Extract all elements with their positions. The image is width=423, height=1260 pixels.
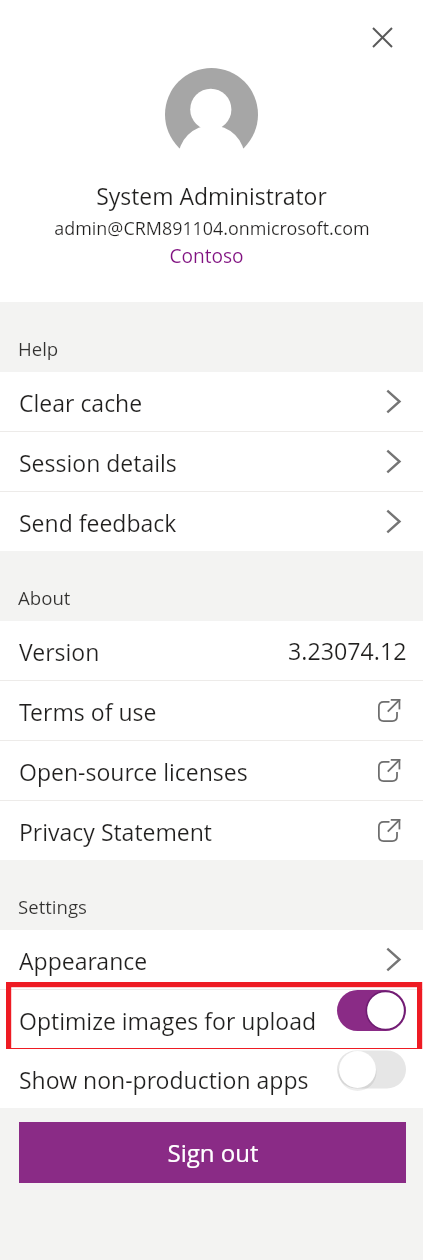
staticText: Help [18, 336, 59, 361]
button[interactable]: Toggle off [337, 1049, 406, 1090]
staticText: Session details [19, 447, 177, 478]
staticText: admin@CRM891104.onmicrosoft.com [54, 216, 370, 240]
button[interactable]: Session details [0, 432, 423, 491]
button[interactable]: Clear cache [0, 372, 423, 431]
staticText: 3.23074.12 [288, 635, 407, 667]
button[interactable]: Appearance [0, 930, 423, 989]
button[interactable]: Version [0, 621, 423, 680]
staticText: Version [19, 636, 100, 667]
staticText: Clear cache [19, 387, 143, 418]
button[interactable]: Send feedback [0, 492, 423, 551]
staticText: Send feedback [19, 507, 177, 538]
staticText: Show non-production apps [19, 1064, 309, 1095]
button[interactable]: Toggle on [337, 990, 406, 1031]
staticText: System Administrator [96, 181, 327, 212]
staticText: Terms of use [19, 696, 157, 727]
button[interactable]: Terms of use [0, 681, 423, 740]
staticText: About [18, 585, 71, 610]
button[interactable]: Close [348, 3, 416, 71]
button[interactable]: Open-source licenses [0, 741, 423, 800]
staticText: Settings [18, 894, 87, 919]
staticText: Contoso [169, 243, 244, 269]
staticText: Optimize images for upload [19, 1005, 317, 1036]
staticText: Sign out [167, 1136, 259, 1169]
button[interactable]: Privacy Statement [0, 801, 423, 860]
staticText: Appearance [19, 945, 148, 976]
staticText: Privacy Statement [19, 816, 212, 847]
button[interactable]: Optimize images for upload [0, 990, 423, 1049]
button[interactable]: Show non-production apps [0, 1049, 423, 1108]
button[interactable]: Sign out [19, 1122, 406, 1183]
staticText: Open-source licenses [19, 756, 248, 787]
